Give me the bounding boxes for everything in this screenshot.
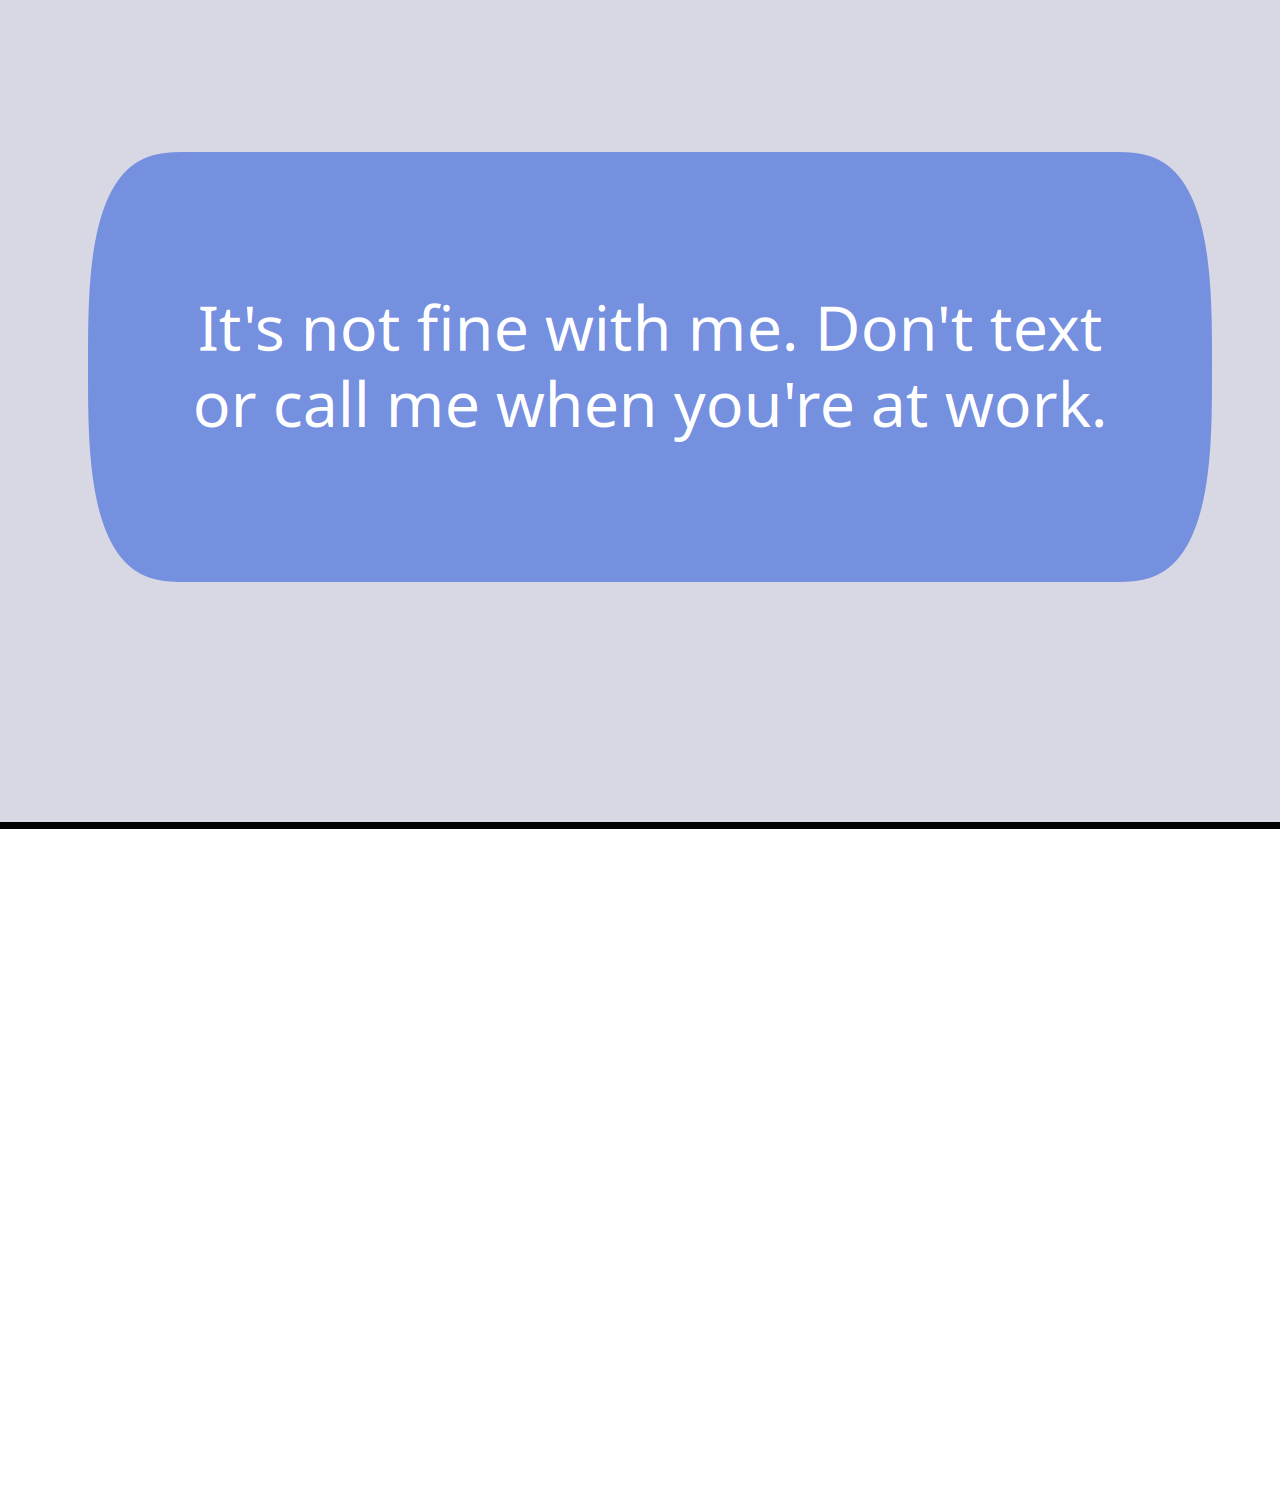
button[interactable]: It's not fine with me. Don't text or cal…	[88, 152, 1212, 582]
staticText: It's not fine with me. Don't text or cal…	[192, 285, 1107, 444]
